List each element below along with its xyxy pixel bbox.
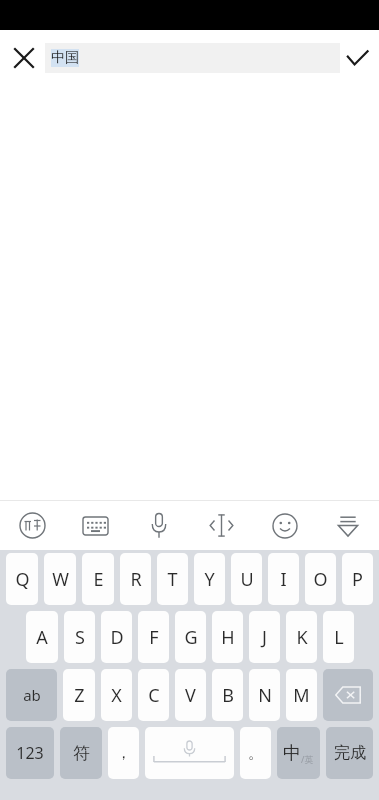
button[interactable]: D [101,611,132,663]
button[interactable]: K [286,611,317,663]
button[interactable]: Z [63,669,95,721]
button[interactable]: H [212,611,243,663]
button[interactable]: O [305,553,336,605]
button[interactable]: X [101,669,132,721]
button[interactable]: J [249,611,280,663]
button[interactable]: E [82,553,114,605]
button[interactable]: L [323,611,354,663]
staticText: W [52,567,69,592]
button[interactable]: V [175,669,206,721]
button[interactable]: F [138,611,169,663]
button[interactable]: Keyboard layout [64,501,127,550]
button[interactable]: 中国 [45,43,340,73]
staticText: 123 [16,742,44,764]
staticText: 符 [73,743,90,764]
staticText: R [130,567,142,592]
button[interactable]: Emoji [253,501,316,550]
button[interactable]: Input method [0,501,64,550]
staticText: 中国 [51,49,79,67]
staticText: /英 [301,753,314,765]
staticText: H [221,625,235,650]
button[interactable]: Backspace [323,669,373,721]
staticText: X [111,683,122,708]
button[interactable]: Q [6,553,38,605]
staticText: C [148,683,160,708]
staticText: O [313,567,328,592]
staticText: D [110,625,124,650]
button[interactable]: B [212,669,243,721]
staticText: B [222,683,234,708]
staticText: ab [23,685,41,705]
button[interactable]: 123 [6,727,54,779]
staticText: S [75,625,85,650]
button[interactable]: Voice input [127,501,190,550]
staticText: N [258,683,272,708]
button[interactable]: 中 [277,727,320,779]
staticText: V [185,683,196,708]
staticText: P [352,567,363,592]
button[interactable]: M [286,669,317,721]
button[interactable]: U [231,553,262,605]
button[interactable]: 完成 [326,727,373,779]
button[interactable]: W [44,553,76,605]
button[interactable]: G [175,611,206,663]
staticText: M [293,683,310,708]
button[interactable]: ab [6,669,57,721]
staticText: 中 [283,742,301,765]
button[interactable]: 。 [240,727,271,779]
staticText: F [149,625,159,650]
staticText: K [296,625,308,650]
button[interactable]: ， [108,727,139,779]
button[interactable]: Confirm [341,42,373,74]
button[interactable]: T [157,553,188,605]
button[interactable]: R [120,553,151,605]
button[interactable]: A [26,611,58,663]
staticText: Z [74,683,85,708]
staticText: U [240,567,254,592]
staticText: Q [15,567,30,592]
button[interactable]: Space [145,727,234,779]
staticText: 完成 [334,743,366,763]
button[interactable]: Move cursor [190,501,253,550]
button[interactable]: 符 [60,727,102,779]
button[interactable]: N [249,669,280,721]
staticText: 。 [248,744,263,763]
button[interactable]: C [138,669,169,721]
staticText: ， [116,744,131,763]
staticText: I [280,567,287,592]
button[interactable]: Close [8,42,40,74]
button[interactable]: S [64,611,95,663]
staticText: L [334,625,344,650]
staticText: E [93,567,104,592]
button[interactable]: Y [194,553,225,605]
staticText: Y [204,567,215,592]
button[interactable]: P [342,553,373,605]
staticText: J [262,625,267,650]
button[interactable]: Hide keyboard [316,501,379,550]
button[interactable]: I [268,553,299,605]
staticText: G [184,625,198,650]
staticText: T [167,567,178,592]
staticText: A [36,625,48,650]
